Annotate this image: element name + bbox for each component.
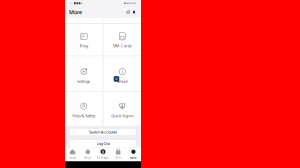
- button[interactable]: About: [104, 56, 141, 91]
- button[interactable]: More: [126, 147, 141, 161]
- button[interactable]: Blog: [65, 24, 102, 56]
- staticText: Help & Safety: [72, 113, 95, 118]
- button[interactable]: Log Out: [69, 140, 136, 147]
- button[interactable]: SIM Cards: [104, 24, 141, 56]
- staticText: Switch Accounts: [89, 129, 117, 135]
- staticText: More: [130, 156, 137, 160]
- button[interactable]: Recharge: [95, 147, 111, 161]
- staticText: Log Out: [96, 141, 109, 146]
- button[interactable]: Help & Safety: [65, 92, 102, 126]
- staticText: Settings: [77, 78, 90, 84]
- staticText: SIM Cards: [113, 43, 132, 48]
- staticText: Home: [69, 156, 77, 160]
- button[interactable]: Quick Sign-in: [104, 92, 141, 126]
- button[interactable]: Bills: [111, 147, 126, 161]
- staticText: About: [117, 78, 127, 84]
- button[interactable]: Shop: [80, 147, 95, 161]
- staticText: More: [69, 9, 82, 16]
- staticText: Bills: [115, 156, 121, 160]
- button[interactable]: Settings: [65, 56, 102, 91]
- staticText: Blog: [80, 43, 88, 48]
- staticText: Recharge: [96, 156, 109, 160]
- staticText: Quick Sign-in: [111, 113, 133, 118]
- button[interactable]: Home: [65, 147, 80, 161]
- button[interactable]: Settings: [125, 9, 131, 15]
- staticText: Shop: [84, 156, 91, 160]
- button[interactable]: Switch Accounts: [69, 128, 136, 136]
- button[interactable]: Notifications: [131, 9, 137, 15]
